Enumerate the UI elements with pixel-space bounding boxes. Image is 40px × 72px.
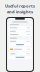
button[interactable]: Report field bbox=[9, 33, 31, 36]
button[interactable]: Report field bbox=[9, 52, 31, 55]
button[interactable]: See all insights bbox=[9, 56, 31, 59]
button[interactable]: Search bbox=[9, 21, 31, 23]
staticText: and insights bbox=[7, 9, 33, 14]
staticText: Useful reports bbox=[5, 3, 35, 8]
button[interactable]: Report field bbox=[9, 26, 31, 29]
button[interactable]: Report field bbox=[9, 40, 31, 43]
button[interactable]: Report field bbox=[9, 30, 31, 33]
button[interactable]: View report bbox=[9, 43, 31, 46]
